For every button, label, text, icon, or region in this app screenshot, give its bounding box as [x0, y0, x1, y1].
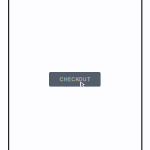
button[interactable]: CHECKOUT: [49, 72, 101, 87]
staticText: CHECKOUT: [60, 76, 90, 82]
